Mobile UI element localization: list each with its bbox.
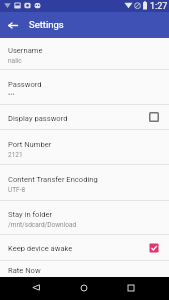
staticText: Keep device awake: [8, 244, 73, 253]
staticText: 1:27: [150, 1, 168, 12]
staticText: Username: [8, 46, 43, 55]
staticText: Password: [8, 80, 42, 89]
staticText: UTF-8: [8, 186, 26, 194]
button[interactable]: Back: [18, 276, 54, 299]
staticText: /mnt/sdcard/Download: [8, 221, 77, 229]
staticText: Content Transfer Encoding: [8, 175, 98, 184]
button[interactable]: Port Number: [0, 130, 169, 165]
staticText: nalic: [8, 57, 22, 65]
button[interactable]: Password: [0, 70, 169, 105]
staticText: Port Number: [8, 140, 52, 149]
button[interactable]: Stay in folder: [0, 201, 169, 235]
button[interactable]: Home: [66, 276, 102, 299]
staticText: •••: [8, 91, 15, 99]
button[interactable]: Back: [0, 12, 26, 38]
staticText: Rate Now: [8, 266, 41, 275]
staticText: Settings: [29, 19, 64, 30]
staticText: Stay in folder: [8, 210, 53, 219]
button[interactable]: Username: [0, 38, 169, 70]
button[interactable]: Recent apps: [113, 276, 149, 299]
staticText: 2121: [8, 151, 23, 159]
button[interactable]: Content Transfer Encoding: [0, 165, 169, 201]
button[interactable]: Display password: [0, 105, 169, 130]
button[interactable]: Rate Now: [0, 261, 169, 277]
button[interactable]: Keep device awake: [0, 235, 169, 261]
staticText: Display password: [8, 114, 68, 123]
